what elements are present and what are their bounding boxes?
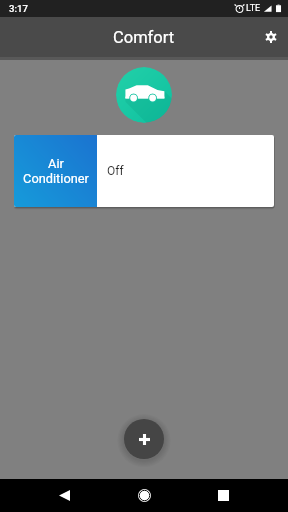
button[interactable]: Back [40, 479, 88, 512]
button[interactable]: Recents [199, 479, 247, 512]
button[interactable]: Air Conditioner [14, 135, 274, 207]
staticText: Air Conditioner [23, 156, 89, 186]
staticText: LTE [246, 3, 261, 14]
staticText: 3:17 [9, 3, 28, 14]
button[interactable]: Home [120, 479, 168, 512]
button[interactable]: Settings [256, 22, 286, 52]
button[interactable]: Add [124, 419, 164, 459]
staticText: Comfort [113, 28, 175, 47]
staticText: Off [107, 164, 124, 178]
